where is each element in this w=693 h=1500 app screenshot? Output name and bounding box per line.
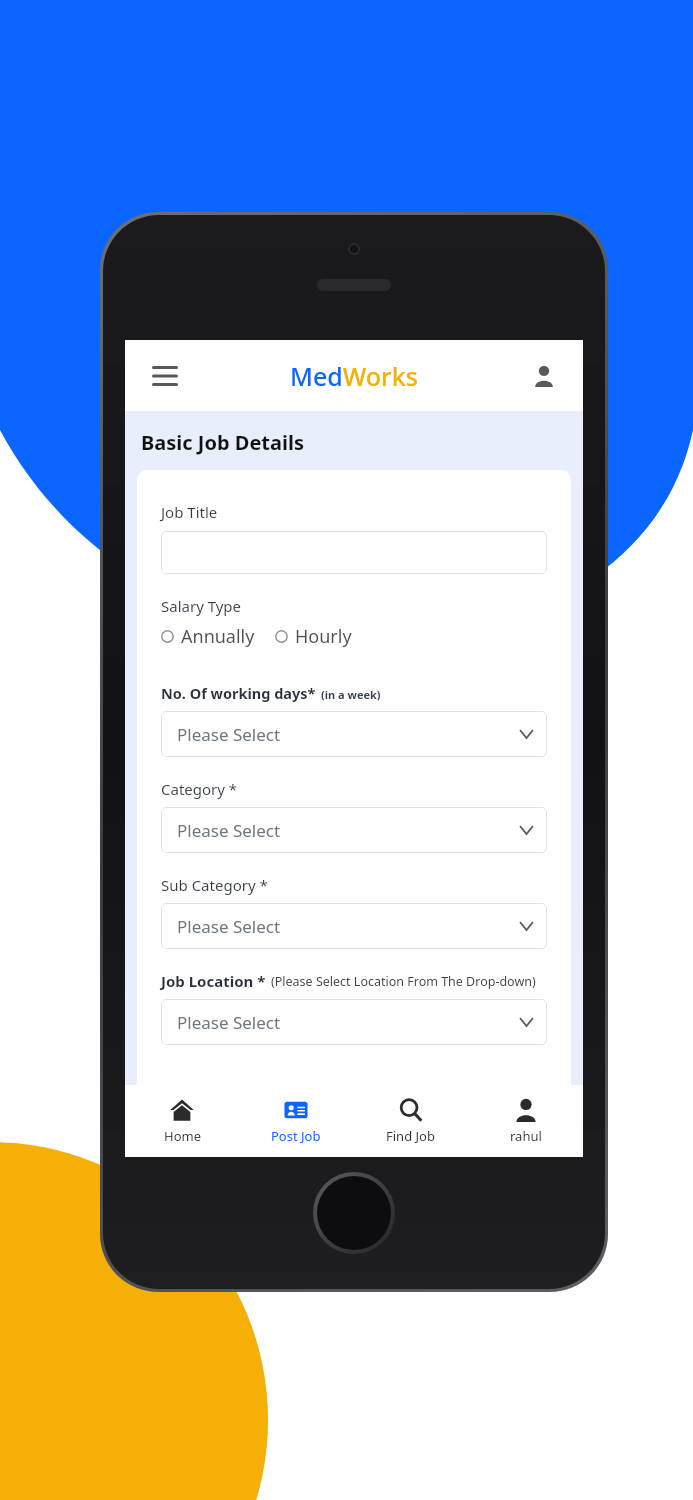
button[interactable]: Account bbox=[525, 357, 563, 395]
button[interactable]: Please Select bbox=[161, 903, 547, 949]
button[interactable]: Post Job bbox=[239, 1085, 353, 1157]
staticText: Annually bbox=[181, 624, 255, 649]
staticText: Category * bbox=[161, 779, 238, 799]
staticText: Sub Category * bbox=[161, 875, 268, 895]
staticText: Please Select bbox=[177, 723, 281, 746]
button[interactable]: Open menu bbox=[145, 356, 185, 396]
staticText: Job Title bbox=[161, 502, 218, 522]
button[interactable]: Please Select bbox=[161, 711, 547, 757]
staticText: Please Select bbox=[177, 915, 281, 938]
button[interactable]: Please Select bbox=[161, 807, 547, 853]
staticText: Find Job bbox=[386, 1127, 435, 1145]
button[interactable]: Home bbox=[125, 1085, 239, 1157]
button[interactable]: rahul bbox=[468, 1085, 583, 1157]
staticText: Salary Type bbox=[161, 596, 242, 616]
button[interactable] bbox=[161, 531, 547, 574]
staticText: Post Job bbox=[271, 1127, 321, 1145]
staticText: (Please Select Location From The Drop-do… bbox=[271, 973, 536, 990]
staticText: No. Of working days* bbox=[161, 683, 316, 703]
staticText: rahul bbox=[510, 1127, 542, 1145]
button[interactable]: Annually bbox=[161, 620, 255, 653]
staticText: Please Select bbox=[177, 819, 281, 842]
staticText: MedWorks bbox=[290, 359, 418, 393]
staticText: Please Select bbox=[177, 1011, 281, 1034]
button[interactable]: Find Job bbox=[353, 1085, 468, 1157]
staticText: (in a week) bbox=[321, 687, 381, 702]
staticText: Home bbox=[164, 1127, 201, 1145]
staticText: Hourly bbox=[295, 624, 352, 649]
button[interactable]: Please Select bbox=[161, 999, 547, 1045]
staticText: Basic Job Details bbox=[141, 429, 304, 456]
staticText: Job Location * bbox=[161, 971, 266, 991]
button[interactable]: Hourly bbox=[275, 620, 352, 653]
